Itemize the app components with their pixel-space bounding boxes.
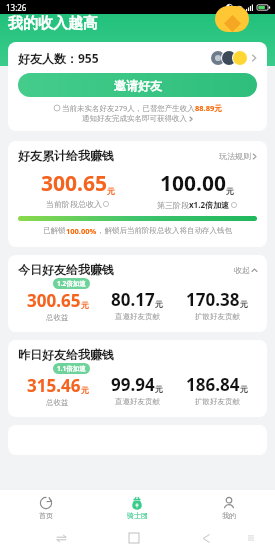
staticText: 当前阶段总收入 <box>46 199 102 209</box>
other: Home <box>129 533 139 543</box>
staticText: 186.84 <box>186 373 240 396</box>
staticText: 收起 <box>234 265 250 275</box>
staticText: 已解锁 <box>43 226 66 235</box>
staticText: 元 <box>107 186 115 196</box>
button[interactable]: 骑士团 <box>91 490 183 526</box>
staticText: 我的收入越高 <box>8 14 98 33</box>
staticText: 我的 <box>222 511 236 520</box>
staticText: 扩散好友贡献 <box>195 397 240 406</box>
staticText: 直邀好友贡献 <box>115 312 160 321</box>
button[interactable]: 首页 <box>0 490 91 526</box>
staticText: 99.94 <box>111 373 155 396</box>
other: Menu <box>248 535 254 541</box>
staticText: 100.00% <box>66 226 97 236</box>
button[interactable]: 玩法规则 <box>219 151 257 161</box>
staticText: 13:26 <box>6 2 27 13</box>
staticText: 邀请好友 <box>114 78 162 93</box>
staticText: 当前未实名好友279人，已替您产生收入 <box>62 103 195 113</box>
staticText: 88.89元 <box>195 103 222 113</box>
staticText: 通知好友完成实名即可获得收入 <box>82 114 187 123</box>
staticText: 170.38 <box>186 288 240 311</box>
staticText: 元 <box>155 384 163 394</box>
staticText: 元 <box>240 299 248 309</box>
staticText: 扩散好友贡献 <box>195 312 240 321</box>
button[interactable]: 我的 <box>183 490 275 526</box>
button[interactable]: 收起 <box>234 265 257 275</box>
staticText: 直邀好友贡献 <box>115 397 160 406</box>
staticText: ，解锁后当前阶段总收入将自动存入钱包 <box>97 226 232 235</box>
staticText: 首页 <box>39 511 53 520</box>
staticText: 好友人数：955 <box>18 50 99 66</box>
staticText: 元 <box>81 385 89 395</box>
button[interactable]: 好友人数：955 <box>18 50 257 66</box>
staticText: 元 <box>226 186 234 196</box>
button[interactable]: 邀请好友 <box>18 73 257 97</box>
staticText: 元 <box>81 300 89 310</box>
button[interactable]: 当前未实名好友279人，已替您产生收入 <box>18 103 257 113</box>
staticText: 80.17 <box>111 288 155 311</box>
staticText: 1.1倍加速 <box>57 364 86 373</box>
staticText: 今日好友给我赚钱 <box>18 262 114 277</box>
other: Back <box>201 533 212 544</box>
staticText: 元 <box>240 384 248 394</box>
staticText: 总收益 <box>46 398 69 407</box>
staticText: 骑士团 <box>127 511 148 520</box>
staticText: 昨日好友给我赚钱 <box>18 347 114 362</box>
staticText: 1.2倍加速 <box>57 279 86 288</box>
staticText: 315.46 <box>27 374 81 397</box>
staticText: 玩法规则 <box>219 151 251 161</box>
staticText: x1.2倍加速 <box>189 199 230 210</box>
staticText: 第三阶段 <box>157 200 189 210</box>
staticText: 100.00 <box>160 169 226 198</box>
other: Recent <box>56 533 67 544</box>
staticText: 好友累计给我赚钱 <box>18 148 114 163</box>
staticText: 300.65 <box>41 169 107 198</box>
staticText: 总收益 <box>46 313 69 322</box>
staticText: 300.65 <box>27 289 81 312</box>
staticText: 元 <box>155 299 163 309</box>
